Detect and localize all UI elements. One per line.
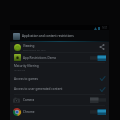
staticText: Camera bbox=[23, 98, 35, 102]
staticText: Viewing bbox=[23, 44, 35, 48]
staticText: Chrome bbox=[23, 110, 35, 114]
button[interactable]: Camera bbox=[14, 95, 105, 105]
button[interactable]: On bbox=[90, 55, 106, 61]
button[interactable]: Up bbox=[13, 33, 20, 40]
staticText: Access to games bbox=[14, 77, 39, 81]
button[interactable]: Enabled bbox=[99, 75, 106, 82]
button[interactable]: Share bbox=[99, 44, 105, 50]
button[interactable]: Access to user generated content bbox=[14, 84, 105, 94]
button[interactable]: App Restrictions Demo bbox=[14, 53, 105, 62]
staticText: Application and content restrictions bbox=[22, 34, 74, 38]
button[interactable]: On bbox=[90, 109, 106, 115]
button[interactable]: Viewing bbox=[14, 42, 105, 52]
staticText: Restrictions for Tom bbox=[23, 48, 46, 51]
staticText: App Restrictions Demo bbox=[23, 56, 57, 60]
button[interactable]: Access to games bbox=[14, 73, 105, 84]
staticText: Access to user generated content bbox=[14, 87, 63, 91]
button[interactable]: Off bbox=[90, 97, 106, 103]
button[interactable]: Enabled bbox=[99, 86, 106, 93]
staticText: moderate bbox=[14, 68, 25, 71]
button[interactable]: Maturity filtering bbox=[14, 63, 105, 73]
staticText: 9:01 bbox=[102, 26, 108, 30]
staticText: Maturity filtering bbox=[14, 64, 39, 68]
button[interactable]: Chrome bbox=[14, 106, 105, 117]
